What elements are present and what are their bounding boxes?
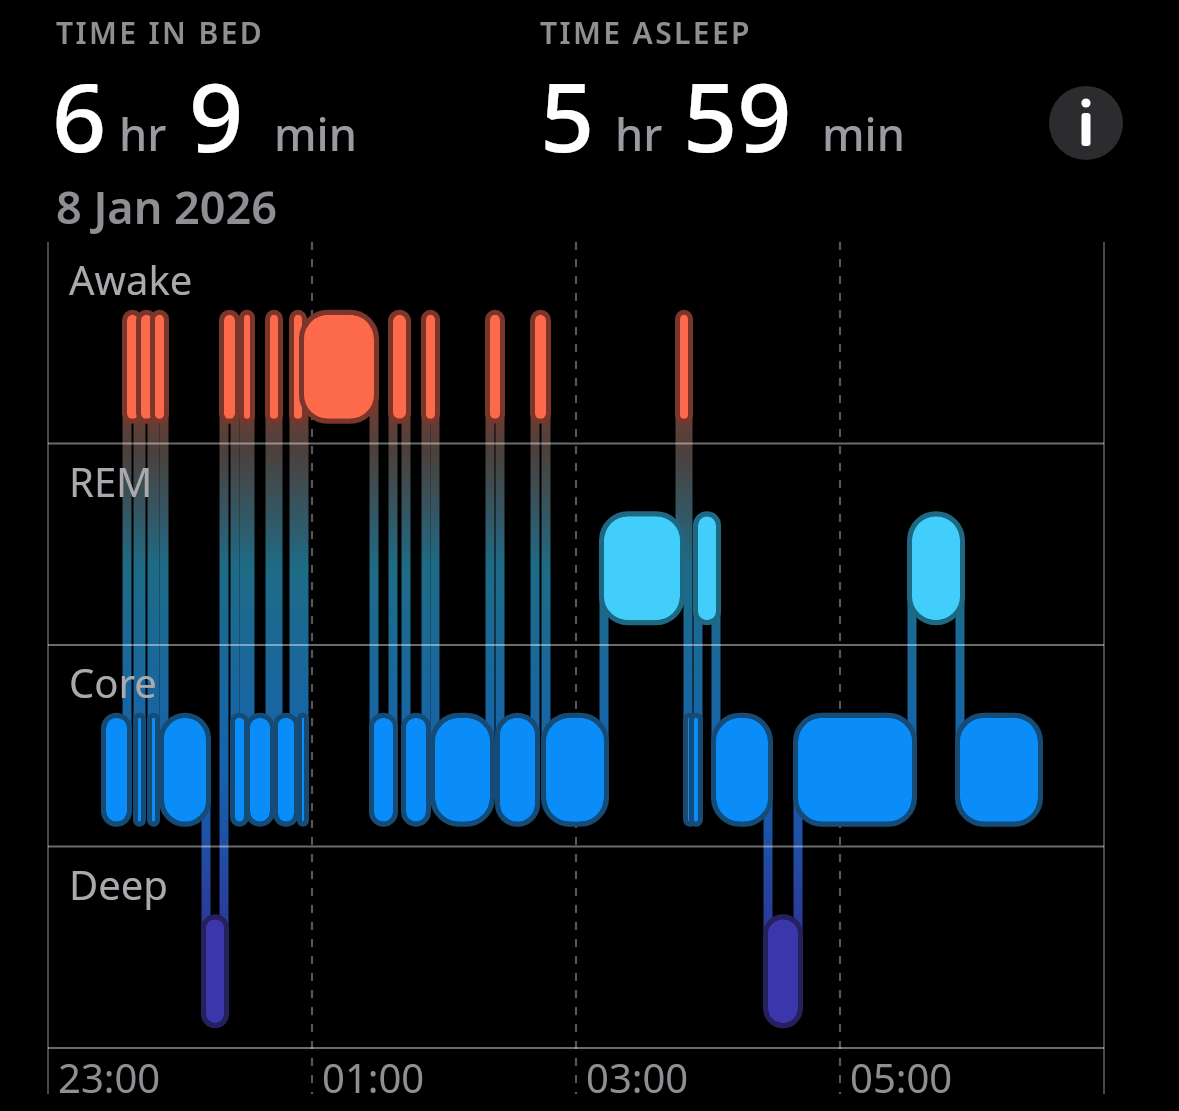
staticText: hr <box>615 103 663 164</box>
staticText: REM <box>69 454 153 508</box>
staticText: Core <box>69 655 157 709</box>
staticText: 5 <box>540 50 595 179</box>
button[interactable] <box>1049 86 1123 160</box>
staticText: 03:00 <box>586 1050 689 1104</box>
staticText: 59 <box>683 50 792 179</box>
staticText: hr <box>119 103 167 164</box>
staticText: 05:00 <box>850 1050 953 1104</box>
staticText: Awake <box>69 252 193 306</box>
staticText: Deep <box>69 857 168 911</box>
staticText: 6 <box>52 50 107 179</box>
staticText: min <box>274 103 357 164</box>
staticText: min <box>822 103 905 164</box>
staticText: 01:00 <box>322 1050 425 1104</box>
staticText: 8 Jan 2026 <box>56 176 278 237</box>
staticText: 9 <box>189 50 244 179</box>
staticText: TIME IN BED <box>56 12 265 53</box>
staticText: 23:00 <box>58 1050 161 1104</box>
staticText: TIME ASLEEP <box>540 12 752 53</box>
